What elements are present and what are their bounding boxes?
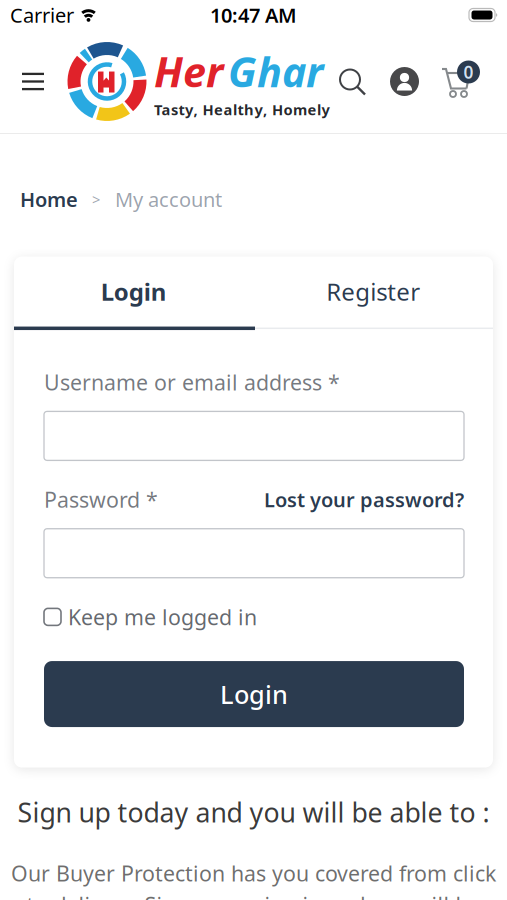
staticText: Lost your password? bbox=[264, 486, 464, 513]
staticText: Password * bbox=[44, 485, 158, 514]
staticText: Home bbox=[20, 186, 78, 213]
button[interactable]: Keep me logged in bbox=[44, 603, 257, 631]
staticText: Register bbox=[326, 276, 420, 307]
staticText: Tasty, Healthy, Homely bbox=[154, 100, 329, 119]
staticText: Ghar bbox=[228, 44, 323, 99]
staticText: Her bbox=[154, 44, 223, 99]
staticText: to delivery. Sign up or sign in and you … bbox=[26, 890, 480, 900]
button[interactable]: Login bbox=[44, 661, 464, 727]
button[interactable]: Cart, 0 items bbox=[441, 60, 480, 102]
button[interactable]: Search bbox=[338, 67, 366, 95]
staticText: Sign up today and you will be able to : bbox=[17, 795, 489, 830]
button[interactable]: My account bbox=[390, 67, 419, 96]
button[interactable]: Home bbox=[20, 186, 78, 213]
staticText: 10:47 AM bbox=[210, 2, 297, 28]
staticText: Keep me logged in bbox=[68, 603, 257, 631]
button[interactable]: Login bbox=[14, 257, 253, 327]
staticText: Our Buyer Protection has you covered fro… bbox=[11, 859, 496, 887]
button[interactable]: Register bbox=[253, 257, 493, 327]
staticText: Username or email address * bbox=[44, 368, 340, 396]
button[interactable]: Lost your password? bbox=[264, 486, 464, 513]
button[interactable]: Her Ghar home bbox=[65, 39, 329, 123]
staticText: My account bbox=[115, 186, 222, 213]
button[interactable]: Menu bbox=[0, 72, 44, 90]
staticText: Login bbox=[220, 677, 288, 711]
staticText: > bbox=[92, 189, 100, 209]
staticText: Carrier bbox=[10, 2, 74, 28]
staticText: 0 bbox=[463, 60, 473, 83]
staticText: Login bbox=[101, 276, 167, 307]
